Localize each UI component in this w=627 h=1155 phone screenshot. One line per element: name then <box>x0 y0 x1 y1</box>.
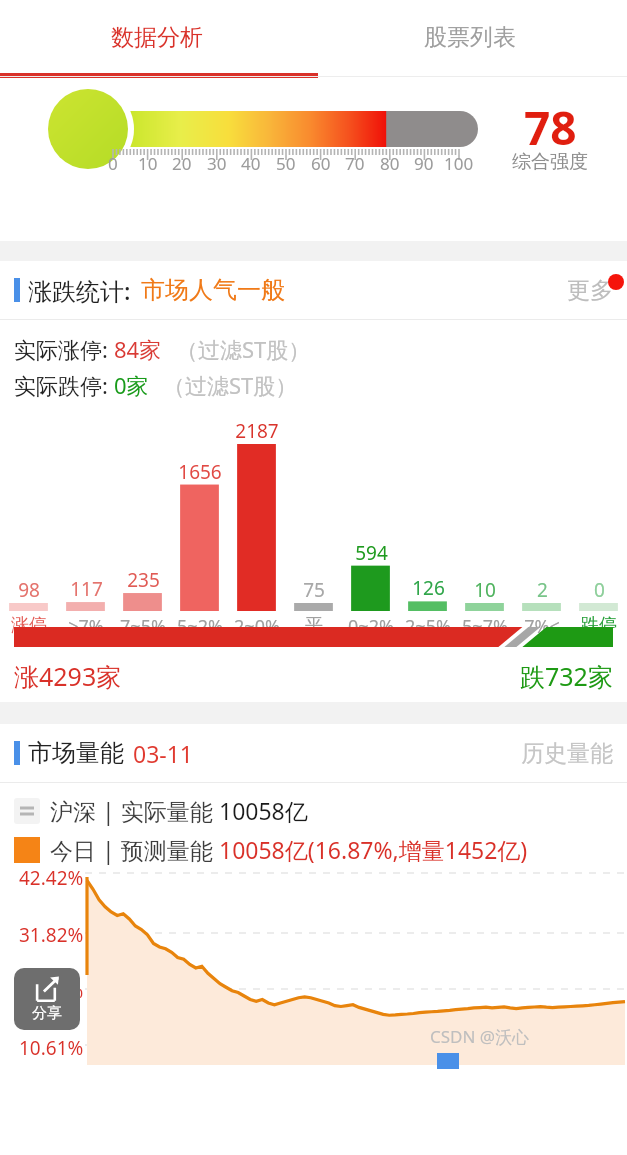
staticText: 今日 | 预测量能 <box>50 834 219 865</box>
staticText: 跌732家 <box>520 659 613 693</box>
staticText: 5~2% <box>177 614 223 639</box>
staticText: 50 <box>276 152 296 175</box>
staticText: 2187 <box>235 418 279 444</box>
staticText: 20 <box>172 152 192 175</box>
staticText: 实际跌停: <box>14 370 114 400</box>
staticText: 沪深 | 实际量能 <box>50 795 219 826</box>
staticText: 股票列表 <box>424 23 516 52</box>
staticText: 2~5% <box>405 614 451 639</box>
staticText: 2 <box>537 577 548 603</box>
staticText: 98 <box>18 577 40 603</box>
staticText: 40 <box>241 152 261 175</box>
button[interactable]: 分享 <box>14 968 80 1030</box>
staticText: 126 <box>412 575 445 601</box>
staticText: 数据分析 <box>111 23 203 52</box>
staticText: 80 <box>380 152 400 175</box>
staticText: 30 <box>207 152 227 175</box>
staticText: 更多 <box>567 276 613 305</box>
staticText: 平 <box>305 614 323 637</box>
staticText: 市场量能 <box>28 738 124 768</box>
staticText: 10 <box>138 152 158 175</box>
staticText: 涨停 <box>11 614 47 637</box>
staticText: CSDN @沃心 <box>430 1025 530 1048</box>
staticText: 84家 <box>114 334 162 364</box>
staticText: 0家 <box>114 370 149 400</box>
staticText: （过滤ST股） <box>163 370 298 400</box>
staticText: 10 <box>474 577 496 603</box>
staticText: 117 <box>70 576 103 602</box>
staticText: 1656 <box>178 459 222 485</box>
staticText: 0 <box>108 152 118 175</box>
staticText: 31.82% <box>19 922 84 948</box>
staticText: >7% <box>68 614 104 639</box>
staticText: 60 <box>311 152 331 175</box>
staticText: 0 <box>594 577 605 603</box>
staticText: 分享 <box>32 1004 62 1023</box>
staticText: 0~2% <box>348 614 394 639</box>
staticText: 涨跌统计: <box>28 274 131 307</box>
staticText: 594 <box>355 540 388 566</box>
staticText: 70 <box>345 152 365 175</box>
staticText: 10.61% <box>19 1035 84 1061</box>
button[interactable]: 股票列表 <box>313 0 627 74</box>
staticText: 市场人气一般 <box>141 275 285 305</box>
staticText: 90 <box>414 152 434 175</box>
staticText: 21.21% <box>19 978 84 1004</box>
staticText: 235 <box>127 567 160 593</box>
staticText: 75 <box>303 577 325 603</box>
staticText: 综合强度 <box>512 150 588 174</box>
staticText: 42.42% <box>19 865 84 891</box>
staticText: 历史量能 <box>521 739 613 768</box>
staticText: 10058亿 <box>219 795 308 826</box>
staticText: 2~0% <box>234 614 280 639</box>
staticText: 03-11 <box>133 738 194 769</box>
staticText: 100 <box>444 152 474 175</box>
button[interactable]: 更多 <box>567 276 613 305</box>
staticText: 7~5% <box>120 614 166 639</box>
staticText: 10058亿(16.87%,增量1452亿) <box>219 834 528 865</box>
staticText: 跌停 <box>581 614 617 637</box>
staticText: 7%< <box>524 614 560 639</box>
staticText: 涨4293家 <box>14 659 122 693</box>
staticText: 5~7% <box>462 614 508 639</box>
staticText: 78 <box>524 96 577 159</box>
staticText: （过滤ST股） <box>176 334 311 364</box>
button[interactable]: 数据分析 <box>0 0 313 74</box>
staticText: 实际涨停: <box>14 334 114 364</box>
button[interactable]: 历史量能 <box>521 739 613 768</box>
